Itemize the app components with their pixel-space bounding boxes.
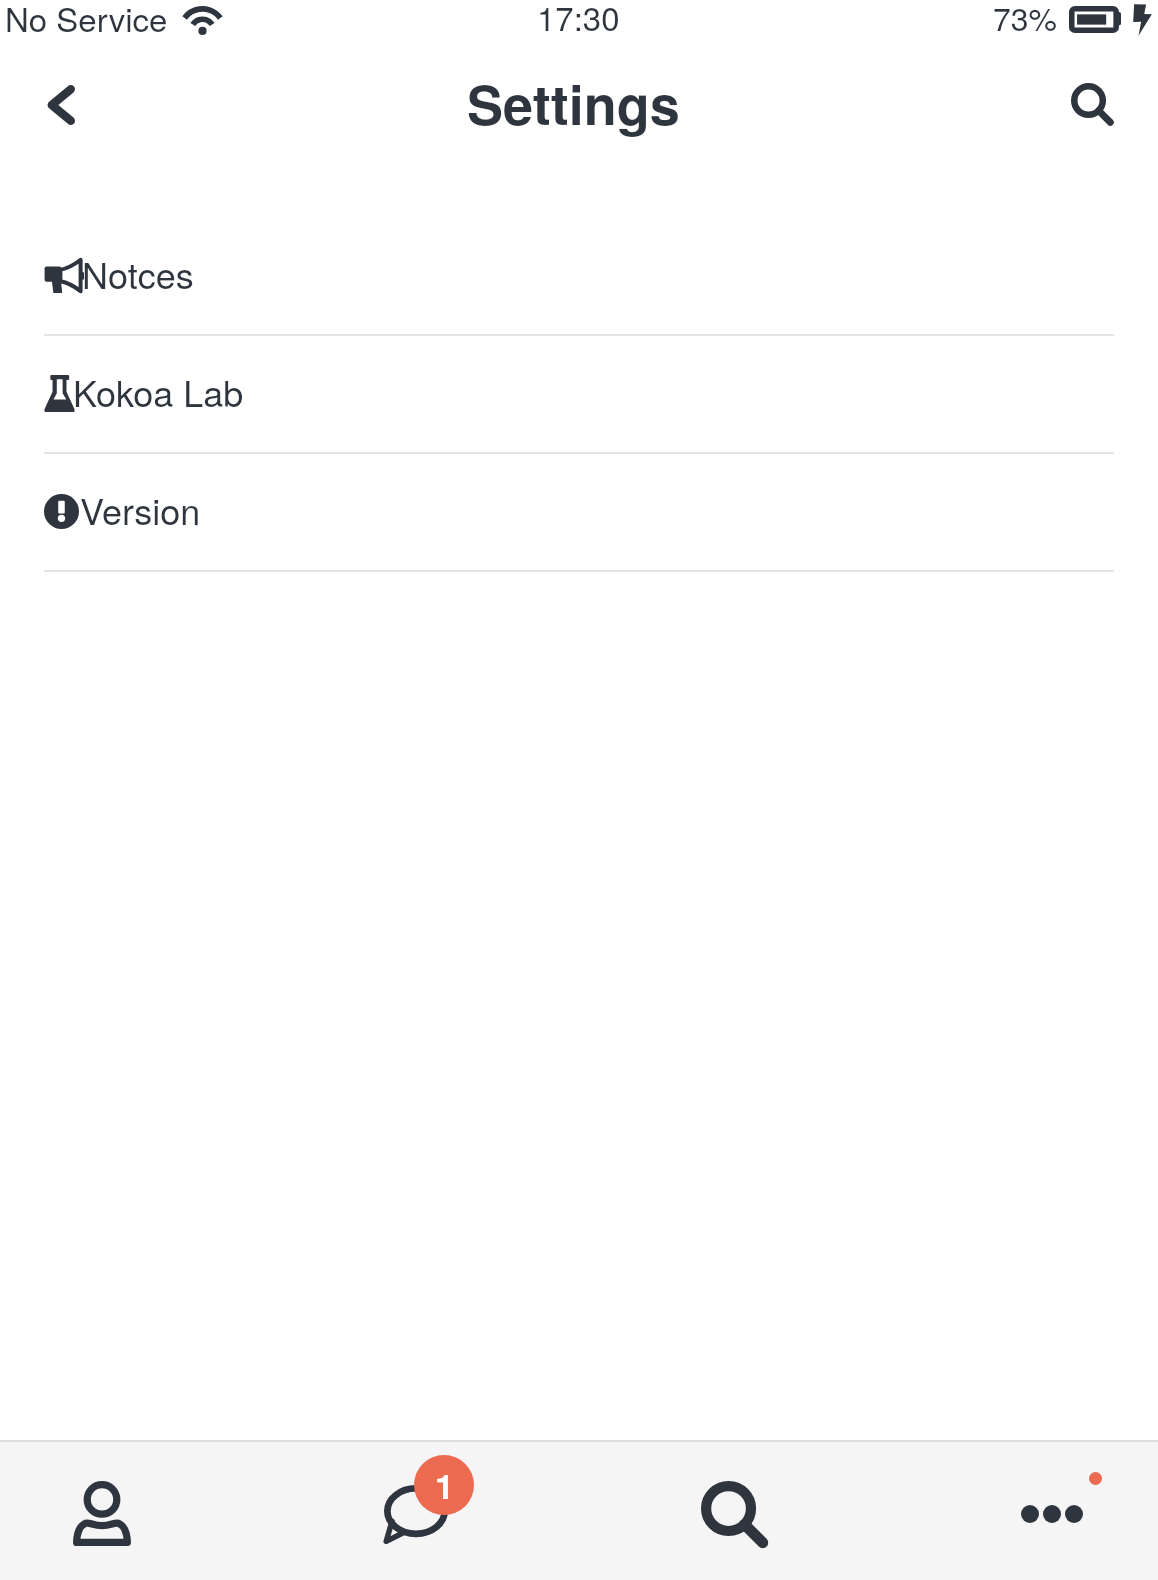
button[interactable]: Kokoa Lab	[0, 336, 1158, 454]
button[interactable]: Notces	[0, 218, 1158, 336]
button[interactable]: Version	[0, 454, 1158, 572]
button[interactable]: Search	[632, 1441, 840, 1580]
staticText: Notces	[82, 248, 194, 300]
button[interactable]: Search	[1056, 63, 1128, 145]
staticText: Kokoa Lab	[73, 366, 244, 418]
button[interactable]: Profile	[0, 1441, 208, 1580]
staticText: 73%	[993, 0, 1058, 40]
staticText: No Service	[5, 0, 168, 40]
staticText: 17:30	[537, 0, 620, 39]
staticText: Settings	[467, 64, 680, 141]
staticText: Version	[80, 484, 201, 536]
button[interactable]: Back	[26, 65, 96, 145]
button[interactable]: Chats	[314, 1441, 522, 1580]
staticText: 1	[435, 1461, 454, 1510]
button[interactable]: More	[950, 1441, 1158, 1580]
